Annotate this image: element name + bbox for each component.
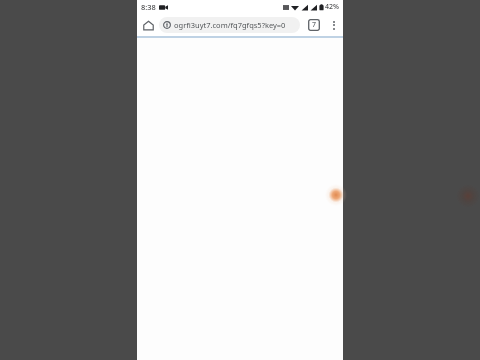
staticText: 7 [312,20,317,30]
staticText: ogrfi3uyt7.com/fq7gfqs5?key=0 [174,20,286,30]
button[interactable]: ogrfi3uyt7.com/fq7gfqs5?key=0 [159,17,300,33]
staticText: 42% [325,2,339,12]
button[interactable]: Home [137,14,159,36]
staticText: 8:38 [141,2,156,12]
button[interactable]: Switch or close tabs [303,14,325,36]
button[interactable]: Customize and control Chrome [325,14,343,36]
